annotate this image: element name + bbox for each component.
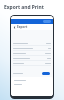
button[interactable]: Print [13,70,50,76]
other: Back [13,26,16,29]
button[interactable] [13,41,51,45]
staticText: Export and Print [4,4,44,11]
button[interactable]: Back [11,24,53,30]
button[interactable] [13,51,51,55]
button[interactable] [11,77,53,96]
button[interactable]: Export [43,20,51,23]
button[interactable] [13,61,51,65]
other: Print [42,72,50,75]
staticText: Export [17,25,28,29]
button[interactable] [13,46,51,50]
button[interactable] [13,56,51,60]
